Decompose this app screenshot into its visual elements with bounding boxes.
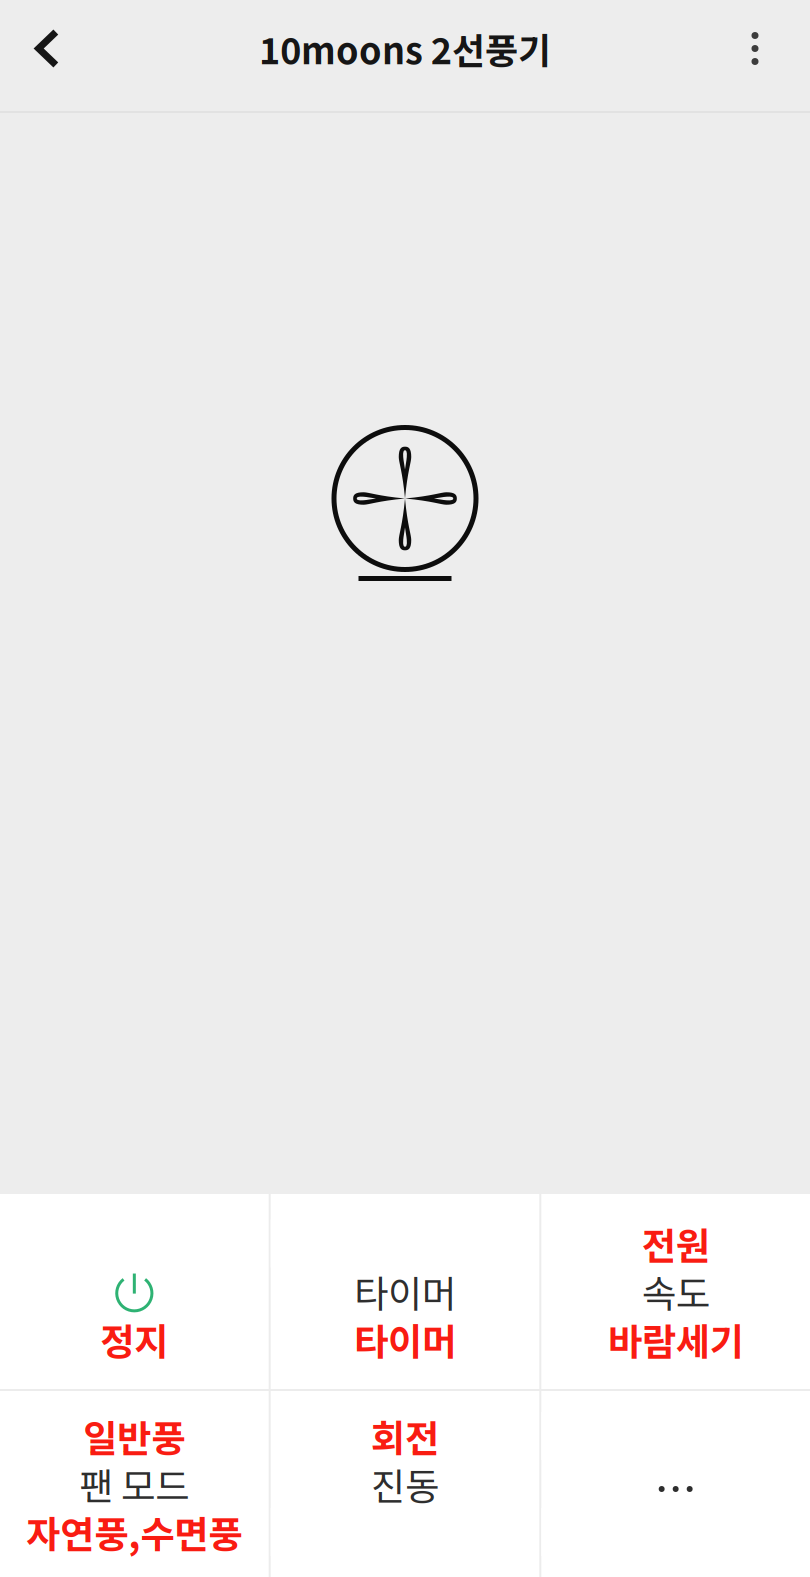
button[interactable]: 일반풍 <box>0 1391 269 1577</box>
staticText: 자연풍,수면풍 <box>26 1505 242 1559</box>
staticText: 타이머 <box>354 1264 456 1319</box>
staticText: 정지 <box>100 1312 168 1367</box>
staticText: 전원 <box>642 1216 710 1271</box>
staticText: 타이머 <box>354 1312 456 1367</box>
staticText: 회전 <box>371 1409 439 1463</box>
button[interactable]: 회전 <box>271 1391 539 1577</box>
staticText: 진동 <box>371 1457 439 1511</box>
staticText: 바람세기 <box>608 1312 744 1367</box>
button[interactable]: More options <box>700 0 810 97</box>
staticText: 10moons 2선풍기 <box>259 22 551 74</box>
button[interactable]: 정지 <box>0 1194 269 1389</box>
staticText: 일반풍 <box>83 1409 185 1463</box>
button[interactable]: 전원 <box>541 1194 810 1389</box>
button[interactable]: Back <box>0 0 94 97</box>
button[interactable]: 타이머 <box>271 1194 539 1389</box>
staticText: 속도 <box>642 1264 710 1319</box>
button[interactable]: More <box>541 1391 810 1577</box>
staticText: 팬 모드 <box>79 1457 189 1511</box>
